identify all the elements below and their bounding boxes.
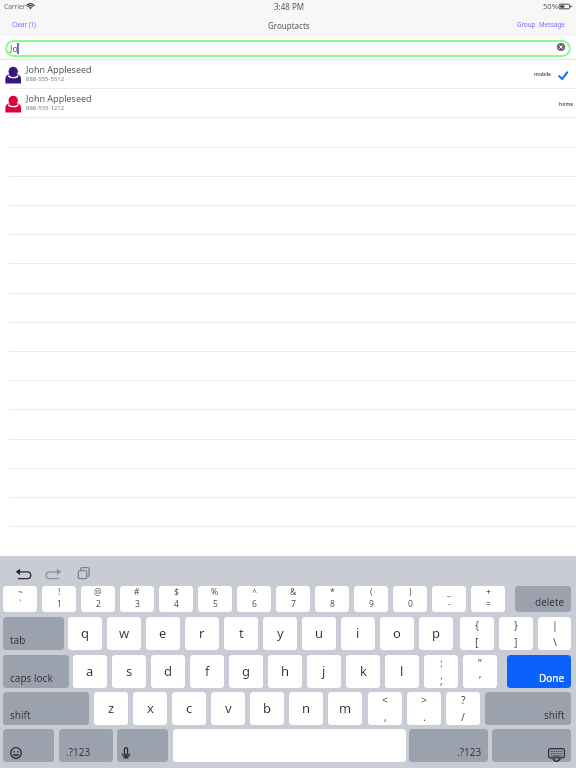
button[interactable]: Paste (78, 567, 90, 579)
button[interactable]: | (538, 617, 571, 650)
staticText: @ (94, 586, 102, 598)
button[interactable]: ” (463, 655, 497, 688)
button[interactable]: _ (432, 586, 466, 612)
button[interactable]: $ (159, 586, 193, 612)
staticText: ^ (252, 586, 257, 598)
button[interactable]: ! (42, 586, 76, 612)
staticText: ? (461, 693, 466, 707)
button[interactable]: m (328, 692, 362, 725)
staticText: < (382, 693, 389, 707)
button[interactable]: x (133, 692, 167, 725)
button[interactable]: u (302, 617, 336, 650)
button[interactable]: d (151, 655, 185, 688)
button[interactable]: f (190, 655, 224, 688)
button[interactable]: g (229, 655, 263, 688)
button[interactable]: e (146, 617, 180, 650)
button[interactable]: ~ (3, 586, 37, 612)
button[interactable]: ^ (237, 586, 271, 612)
button[interactable]: i (341, 617, 375, 650)
button[interactable]: q (68, 617, 102, 650)
staticText: w (119, 624, 130, 642)
button[interactable]: o (380, 617, 414, 650)
button[interactable]: Dictation (117, 729, 168, 762)
button[interactable]: delete (515, 586, 571, 612)
button[interactable]: t (224, 617, 258, 650)
button[interactable]: % (198, 586, 232, 612)
button[interactable]: } (499, 617, 533, 650)
button[interactable]: Redo (47, 567, 60, 579)
button[interactable]: .?123 (409, 729, 488, 762)
button[interactable]: shift (3, 692, 89, 725)
button[interactable]: Group (512, 18, 541, 30)
button[interactable]: shift (485, 692, 571, 725)
button[interactable]: John Appleseed (0, 89, 576, 118)
staticText: 8 (330, 598, 335, 610)
staticText: i (356, 624, 360, 642)
button[interactable]: ( (354, 586, 388, 612)
button[interactable]: < (368, 692, 402, 725)
button[interactable]: tab (3, 617, 64, 650)
staticText: Done (539, 671, 565, 685)
staticText: > (421, 693, 428, 707)
button[interactable]: ? (446, 692, 480, 725)
staticText: } (514, 618, 518, 632)
button[interactable]: b (250, 692, 284, 725)
button[interactable]: a (73, 655, 107, 688)
staticText: = (486, 598, 491, 610)
staticText: Group (517, 20, 536, 28)
button[interactable]: h (268, 655, 302, 688)
button[interactable]: caps lock (3, 655, 69, 688)
button[interactable]: John Appleseed (0, 60, 576, 89)
staticText: 4 (174, 598, 179, 610)
button[interactable]: Undo (17, 567, 30, 579)
button[interactable]: ) (393, 586, 427, 612)
button[interactable]: .?123 (59, 729, 113, 762)
button[interactable]: y (263, 617, 297, 650)
button[interactable]: n (289, 692, 323, 725)
button[interactable]: k (346, 655, 380, 688)
staticText: 2 (96, 598, 101, 610)
staticText: ~ (18, 586, 23, 598)
button[interactable]: & (276, 586, 310, 612)
button[interactable]: > (407, 692, 441, 725)
staticText: .?123 (66, 745, 91, 759)
button[interactable]: z (94, 692, 128, 725)
staticText: 5 (213, 598, 218, 610)
button[interactable]: j (307, 655, 341, 688)
staticText: 3 (135, 598, 140, 610)
button[interactable]: p (419, 617, 453, 650)
button[interactable]: v (211, 692, 245, 725)
staticText: z (108, 699, 115, 717)
staticText: ; (440, 673, 443, 687)
button[interactable]: * (315, 586, 349, 612)
staticText: p (432, 624, 440, 642)
staticText: c (186, 699, 193, 717)
button[interactable]: Done (507, 655, 571, 688)
button[interactable]: c (172, 692, 206, 725)
button[interactable]: w (107, 617, 141, 650)
button[interactable]: Hide keyboard (492, 729, 571, 762)
staticText: g (242, 662, 250, 680)
button[interactable]: + (471, 586, 505, 612)
button[interactable]: r (185, 617, 219, 650)
button[interactable]: l (385, 655, 419, 688)
button[interactable]: Emoji (3, 729, 54, 762)
staticText: j (322, 662, 326, 680)
staticText: ” (478, 656, 482, 670)
button[interactable]: Clear (1) (6, 18, 42, 30)
button[interactable]: Message (534, 18, 570, 30)
staticText: shift (544, 708, 565, 722)
staticText: 1 (57, 598, 62, 610)
staticText: , (384, 710, 387, 724)
button[interactable]: : (424, 655, 458, 688)
button[interactable]: # (120, 586, 154, 612)
button[interactable]: s (112, 655, 146, 688)
staticText: k (360, 662, 367, 680)
button[interactable]: { (460, 617, 494, 650)
button[interactable]: Jo (5, 40, 571, 57)
staticText: . (423, 710, 426, 724)
button[interactable]: @ (81, 586, 115, 612)
button[interactable]: Clear text (556, 42, 566, 52)
staticText: [ (475, 635, 479, 649)
